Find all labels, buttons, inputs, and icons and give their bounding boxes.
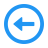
button[interactable]: Back — [0, 0, 48, 48]
